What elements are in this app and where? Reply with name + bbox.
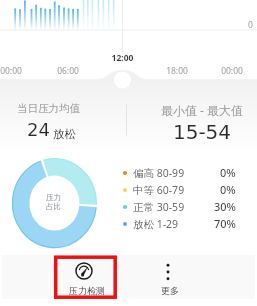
- staticText: 压力检测: [69, 285, 105, 296]
- staticText: 12:00: [102, 52, 143, 64]
- staticText: 00:00: [0, 65, 31, 77]
- button[interactable]: 压力检测: [55, 256, 116, 298]
- staticText: 正常 30-59: [133, 200, 185, 214]
- staticText: 中等 60-79: [133, 183, 185, 197]
- staticText: 压力: [46, 193, 61, 202]
- staticText: 24: [27, 119, 50, 140]
- staticText: 放松: [53, 127, 76, 141]
- staticText: 占比: [46, 202, 61, 211]
- staticText: 30%: [214, 199, 236, 214]
- staticText: 06:00: [48, 65, 88, 77]
- staticText: 0: [248, 19, 253, 31]
- staticText: 70%: [214, 216, 236, 231]
- staticText: 15-54: [132, 120, 257, 143]
- staticText: 更多: [161, 285, 179, 296]
- staticText: 最小值 - 最大值: [132, 102, 257, 118]
- staticText: 0%: [220, 182, 236, 197]
- staticText: 当日压力均值: [17, 102, 80, 115]
- staticText: 0%: [220, 165, 236, 180]
- staticText: 18:00: [157, 65, 197, 77]
- staticText: 放松 1-29: [133, 217, 179, 231]
- staticText: 00:00: [212, 65, 252, 77]
- button[interactable]: 更多: [140, 256, 196, 298]
- staticText: 偏高 80-99: [133, 166, 185, 180]
